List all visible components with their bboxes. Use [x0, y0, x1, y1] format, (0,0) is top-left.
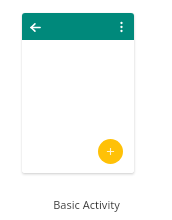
button[interactable]: More options	[112, 18, 130, 36]
button[interactable]: Navigate up	[26, 18, 44, 36]
button[interactable]: Add	[98, 139, 123, 164]
staticText: Basic Activity	[53, 197, 120, 212]
